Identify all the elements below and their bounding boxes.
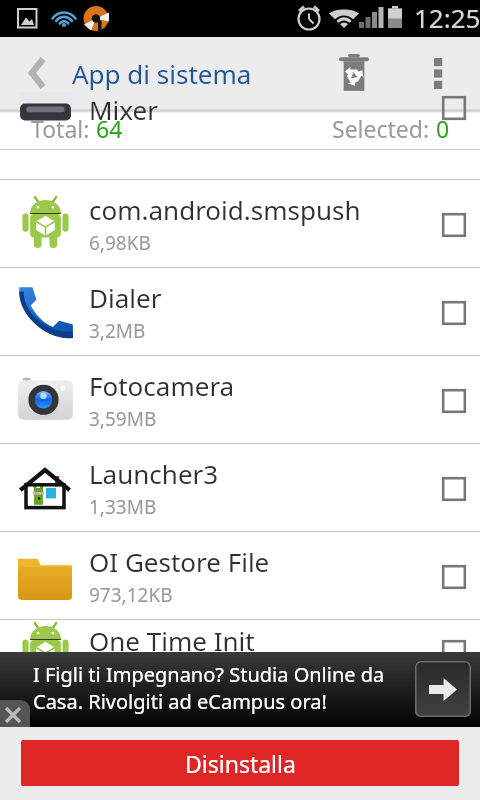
button[interactable]: Fotocamera (0, 356, 480, 443)
staticText: 64 (96, 113, 123, 144)
button[interactable]: One Time Init (0, 620, 480, 681)
staticText: Mixer (89, 92, 158, 121)
staticText: 0 (436, 113, 450, 144)
staticText: Total: (31, 113, 96, 144)
staticText: 12:25 (414, 0, 480, 35)
button[interactable]: OI Gestore File (0, 532, 480, 619)
button[interactable]: Launcher3 (0, 444, 480, 531)
button[interactable]: Back (0, 37, 268, 109)
staticText: I Figli ti Impegnano? Studia Online da (33, 661, 385, 688)
button[interactable]: More options (414, 37, 462, 109)
staticText: One Time Init (89, 623, 255, 658)
staticText: 1,33MB (89, 494, 157, 520)
staticText: OI Gestore File (89, 544, 270, 579)
staticText: 3,59MB (89, 406, 157, 432)
button[interactable]: Recycle bin (326, 37, 382, 109)
button[interactable]: com.android.smspush (0, 180, 480, 267)
button[interactable]: Open ad (415, 661, 471, 717)
button[interactable]: Close ad (0, 700, 30, 727)
staticText: com.android.smspush (89, 192, 361, 227)
staticText: Selected: (332, 113, 436, 144)
staticText: Disinstalla (185, 748, 296, 779)
staticText: 973,12KB (89, 582, 173, 608)
button[interactable]: Dialer (0, 268, 480, 355)
staticText: Dialer (89, 280, 162, 315)
button[interactable]: Disinstalla (21, 740, 459, 786)
button[interactable]: Mixer (0, 92, 480, 121)
staticText: 6,98KB (89, 230, 151, 256)
button[interactable]: I Figli ti Impegnano? Studia Online da (0, 652, 480, 727)
other: Back (29, 58, 43, 88)
staticText: Launcher3 (89, 456, 219, 491)
staticText: 3,2MB (89, 318, 146, 344)
staticText: App di sistema (72, 56, 252, 91)
staticText: Casa. Rivolgiti ad eCampus ora! (33, 688, 327, 715)
staticText: Fotocamera (89, 368, 235, 403)
